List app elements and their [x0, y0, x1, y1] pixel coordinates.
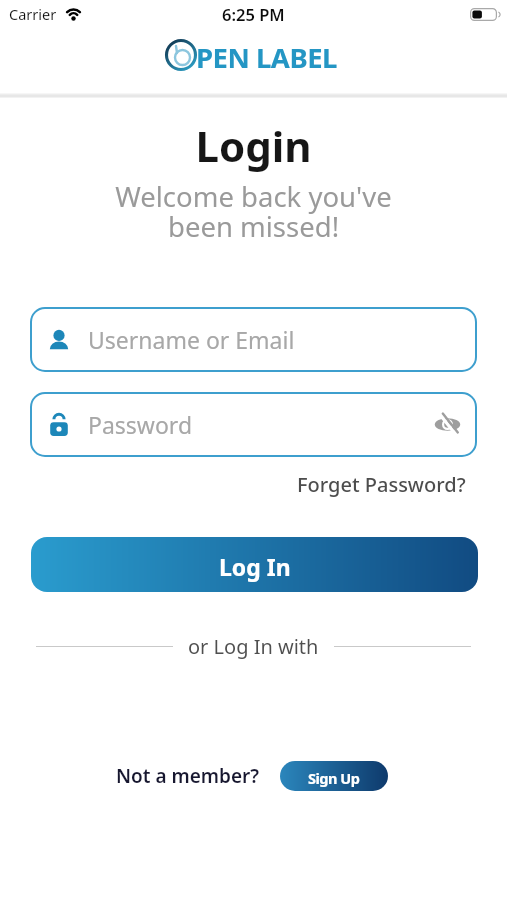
button[interactable]: Log In	[31, 537, 478, 592]
staticText: Password	[88, 409, 193, 440]
button[interactable]: Forget Password?	[297, 471, 466, 498]
staticText: Welcome back you've been missed!	[0, 178, 507, 245]
staticText: 6:25 PM	[222, 3, 285, 25]
staticText: or Log In with	[188, 633, 319, 660]
button[interactable]: Username or Email	[30, 307, 477, 372]
staticText: Log In	[219, 551, 291, 582]
staticText: Sign Up	[308, 768, 360, 788]
button[interactable]: Sign Up	[280, 761, 388, 791]
staticText: Carrier	[9, 4, 57, 24]
staticText: Login	[0, 117, 507, 174]
staticText: Username or Email	[88, 324, 295, 355]
staticText: Not a member?	[116, 763, 260, 789]
staticText: PEN LABEL	[196, 39, 337, 76]
button[interactable]: Password	[30, 392, 477, 457]
